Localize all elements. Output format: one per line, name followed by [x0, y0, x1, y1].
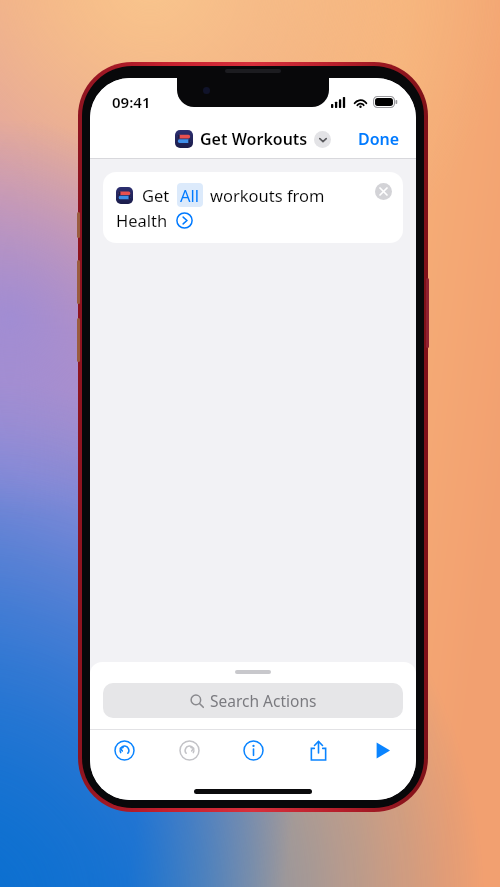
button[interactable]: Undo	[104, 730, 144, 770]
button[interactable]: Redo	[169, 730, 209, 770]
staticText: Health	[116, 209, 168, 231]
button[interactable]: Run	[362, 730, 402, 770]
button[interactable]: All	[177, 183, 203, 207]
staticText: Get	[142, 184, 170, 206]
button[interactable]: Done	[342, 122, 416, 156]
button[interactable]: Details	[233, 730, 273, 770]
button[interactable]: Search Actions	[103, 683, 403, 718]
staticText: Done	[358, 128, 400, 150]
staticText: All	[180, 184, 200, 206]
staticText: Search Actions	[210, 690, 317, 711]
button[interactable]: Get Workouts	[175, 128, 331, 150]
staticText: workouts from	[210, 184, 325, 206]
button[interactable]: Show more	[176, 212, 193, 229]
staticText: Get Workouts	[200, 128, 308, 150]
button[interactable]: Share	[298, 730, 338, 770]
button[interactable]: Get	[103, 172, 403, 243]
button[interactable]: Remove action	[375, 183, 392, 200]
staticText: 09:41	[112, 92, 151, 112]
